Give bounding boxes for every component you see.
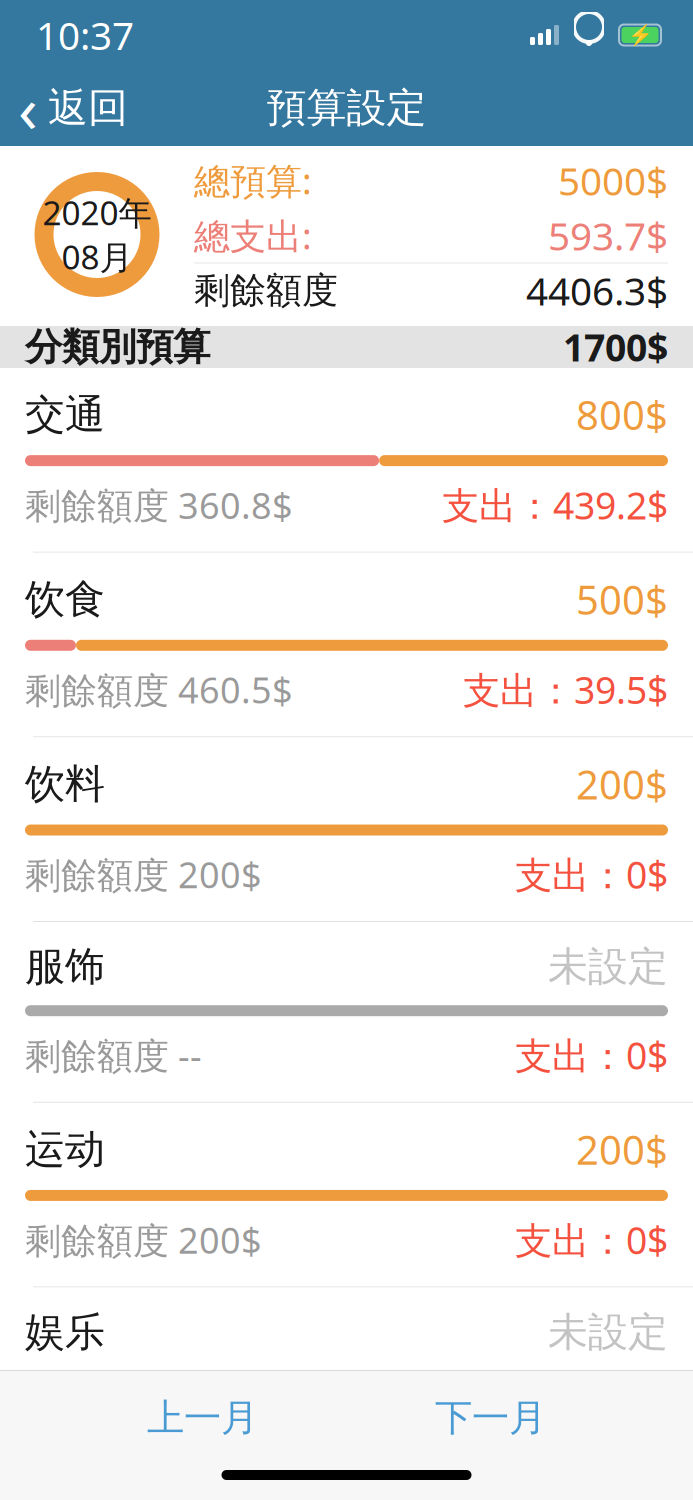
staticText: 未設定 xyxy=(548,1307,668,1357)
staticText: 支出：0$ xyxy=(515,1215,668,1264)
staticText: 1700$ xyxy=(563,322,668,372)
staticText: 500$ xyxy=(576,573,668,626)
button[interactable]: 上一月 xyxy=(117,1381,288,1455)
button[interactable]: 交通 xyxy=(0,368,693,552)
button[interactable]: 饮料 xyxy=(0,737,693,921)
staticText: 剩餘額度 460.5$ xyxy=(25,666,293,713)
staticText: 總預算: xyxy=(194,157,312,204)
staticText: 返回 xyxy=(48,83,128,132)
staticText: 支出：0$ xyxy=(515,849,668,899)
staticText: 剩餘額度 200$ xyxy=(25,850,262,898)
staticText: 預算設定 xyxy=(266,83,426,132)
staticText: 200$ xyxy=(576,757,668,810)
button[interactable]: 运动 xyxy=(0,1103,693,1286)
staticText: 593.7$ xyxy=(548,210,668,261)
button[interactable]: 娱乐 xyxy=(0,1287,693,1467)
staticText: 服饰 xyxy=(25,942,105,991)
button[interactable]: 下一月 xyxy=(405,1381,576,1455)
staticText: 饮料 xyxy=(25,759,105,808)
staticText: 支出：0$ xyxy=(515,1396,668,1445)
staticText: 剩餘額度 200$ xyxy=(25,1216,262,1264)
staticText: 5000$ xyxy=(558,155,668,206)
staticText: 运动 xyxy=(25,1125,105,1174)
staticText: 剩餘額度 -- xyxy=(25,1031,202,1079)
staticText: 未設定 xyxy=(548,942,668,991)
staticText: 上一月 xyxy=(147,1395,258,1441)
staticText: 剩餘額度 xyxy=(194,268,338,313)
staticText: 支出：39.5$ xyxy=(463,665,668,714)
staticText: 支出：0$ xyxy=(515,1030,668,1080)
staticText: 剩餘額度 360.8$ xyxy=(25,481,293,529)
staticText: 10:37 xyxy=(36,9,134,61)
button[interactable]: ‹ xyxy=(0,73,142,143)
staticText: 下一月 xyxy=(435,1395,546,1441)
staticText: 分類別預算 xyxy=(25,324,210,370)
button[interactable]: 服饰 xyxy=(0,922,693,1102)
staticText: 支出：439.2$ xyxy=(442,480,668,530)
staticText: 剩餘額度 -- xyxy=(25,1396,202,1444)
staticText: 200$ xyxy=(576,1123,668,1176)
button[interactable]: 饮食 xyxy=(0,553,693,736)
staticText: 4406.3$ xyxy=(526,265,668,316)
staticText: 總支出: xyxy=(194,212,312,259)
button[interactable]: 通讯 xyxy=(0,1468,693,1500)
staticText: 娱乐 xyxy=(25,1307,105,1357)
staticText: 饮食 xyxy=(25,575,105,624)
staticText: 08月 xyxy=(61,234,132,279)
staticText: 800$ xyxy=(576,388,668,441)
staticText: 交通 xyxy=(25,390,105,439)
staticText: ‹ xyxy=(18,65,38,150)
staticText: 2020年 xyxy=(42,190,151,234)
staticText: ⚡ xyxy=(627,24,652,46)
